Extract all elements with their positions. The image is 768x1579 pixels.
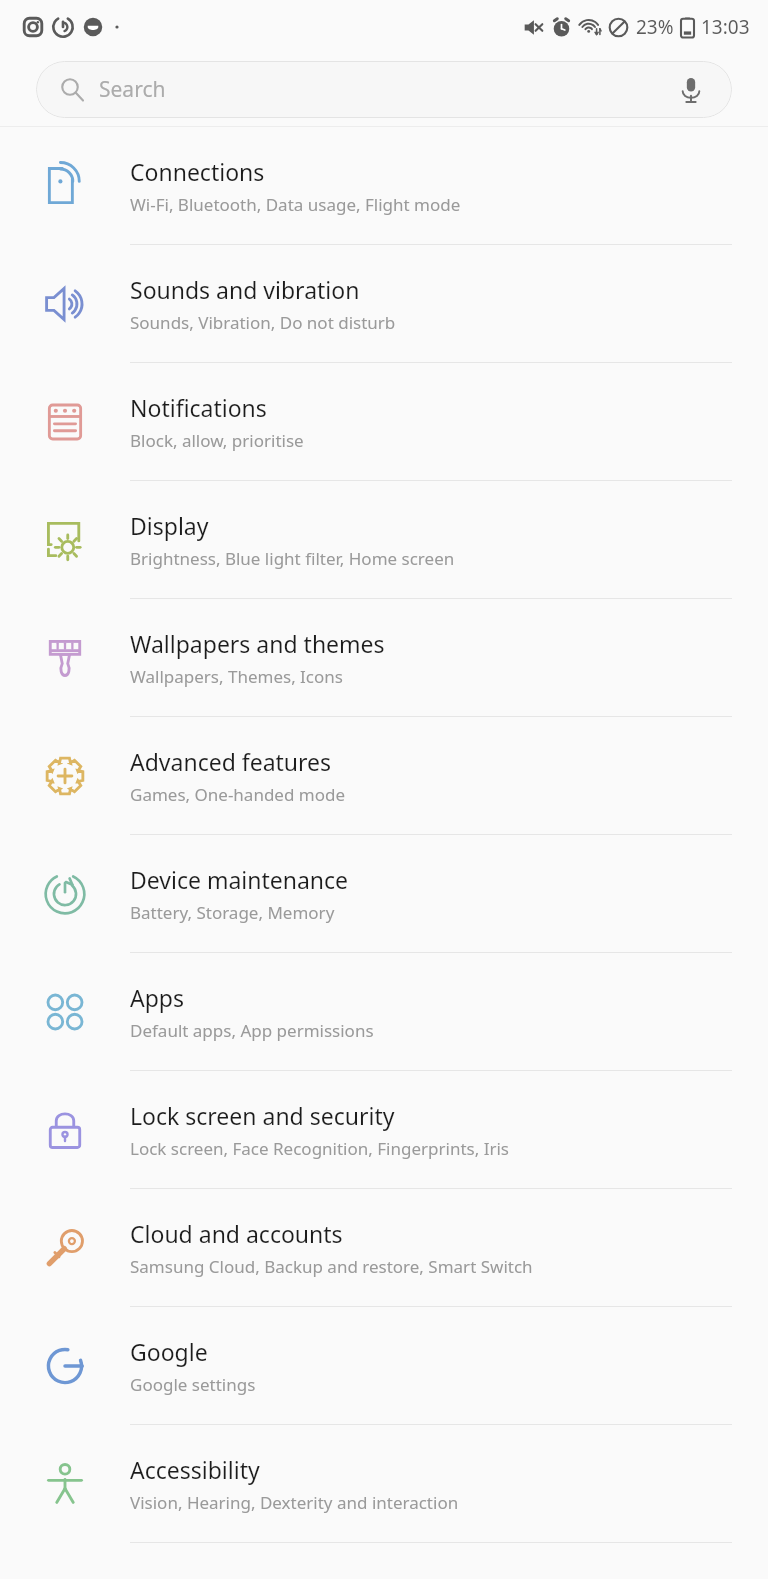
button[interactable]: Apps (0, 953, 768, 1071)
staticText: Brightness, Blue light filter, Home scre… (130, 547, 455, 570)
staticText: Lock screen, Face Recognition, Fingerpri… (130, 1137, 509, 1160)
button[interactable]: Wallpapers and themes (0, 599, 768, 717)
staticText: Sounds and vibration (130, 274, 360, 305)
button[interactable]: Notifications (0, 363, 768, 481)
staticText: Display (130, 510, 209, 541)
staticText: Notifications (130, 392, 267, 423)
button[interactable]: Display (0, 481, 768, 599)
button[interactable]: Google (0, 1307, 768, 1425)
staticText: 23% (636, 14, 674, 40)
staticText: Lock screen and security (130, 1100, 395, 1131)
staticText: Device maintenance (130, 864, 349, 895)
button[interactable]: Lock screen and security (0, 1071, 768, 1189)
button[interactable]: Accessibility (0, 1425, 768, 1543)
staticText: Wallpapers, Themes, Icons (130, 665, 343, 688)
button[interactable]: Sounds and vibration (0, 245, 768, 363)
button[interactable]: Cloud and accounts (0, 1189, 768, 1307)
staticText: Block, allow, prioritise (130, 429, 304, 452)
staticText: Cloud and accounts (130, 1218, 343, 1249)
staticText: Apps (130, 982, 185, 1013)
staticText: Google (130, 1336, 208, 1367)
staticText: Google settings (130, 1373, 256, 1396)
staticText: Battery, Storage, Memory (130, 901, 335, 924)
staticText: Samsung Cloud, Backup and restore, Smart… (130, 1255, 533, 1278)
staticText: Default apps, App permissions (130, 1019, 374, 1042)
button[interactable]: Advanced features (0, 717, 768, 835)
staticText: Wi-Fi, Bluetooth, Data usage, Flight mod… (130, 193, 461, 216)
button[interactable]: Device maintenance (0, 835, 768, 953)
staticText: Sounds, Vibration, Do not disturb (130, 311, 396, 334)
staticText: Search (99, 75, 166, 104)
staticText: Wallpapers and themes (130, 628, 385, 659)
button[interactable]: Search (36, 61, 732, 118)
staticText: 13:03 (701, 14, 750, 40)
staticText: Accessibility (130, 1454, 260, 1485)
staticText: Games, One-handed mode (130, 783, 346, 806)
staticText: Connections (130, 156, 265, 187)
staticText: Advanced features (130, 746, 332, 777)
staticText: Vision, Hearing, Dexterity and interacti… (130, 1491, 459, 1514)
button[interactable]: Voice search (674, 73, 708, 107)
button[interactable]: Connections (0, 127, 768, 245)
